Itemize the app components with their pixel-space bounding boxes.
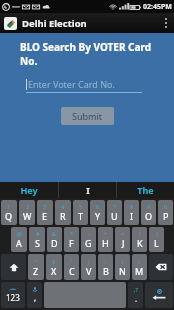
- button[interactable]: Backspace: [149, 254, 173, 280]
- staticText: N: [119, 265, 126, 277]
- button[interactable]: 4: [55, 200, 71, 225]
- staticText: G: [85, 237, 92, 249]
- staticText: =: [121, 230, 125, 237]
- staticText: Delhi Election: [22, 17, 87, 30]
- staticText: &: [52, 230, 57, 237]
- staticText: .: [135, 293, 138, 304]
- button[interactable]: :: [81, 254, 96, 280]
- staticText: Y: [95, 210, 101, 222]
- staticText: I: [86, 184, 90, 196]
- button[interactable]: ): [149, 227, 164, 252]
- staticText: B: [103, 265, 109, 277]
- staticText: H: [102, 237, 109, 249]
- button[interactable]: +: [98, 227, 113, 252]
- button[interactable]: !: [115, 254, 130, 280]
- button[interactable]: Shift: [1, 254, 26, 280]
- staticText: (: [139, 230, 141, 237]
- button[interactable]: Hey: [0, 182, 58, 198]
- button[interactable]: *: [64, 227, 79, 252]
- button[interactable]: $: [46, 254, 62, 280]
- staticText: Z: [33, 265, 39, 277]
- staticText: L: [154, 237, 159, 249]
- staticText: T: [78, 210, 84, 222]
- button[interactable]: /: [132, 254, 147, 280]
- button[interactable]: #: [29, 227, 45, 252]
- staticText: $: [52, 258, 56, 265]
- staticText: #: [36, 230, 40, 237]
- button[interactable]: 0: [158, 200, 173, 225]
- staticText: The: [137, 184, 154, 196]
- staticText: 9: [147, 203, 151, 210]
- staticText: J: [122, 237, 125, 249]
- staticText: X: [51, 265, 57, 277]
- staticText: K: [137, 237, 143, 249]
- staticText: W: [23, 210, 32, 222]
- button[interactable]: ': [64, 254, 79, 280]
- staticText: 3: [43, 203, 47, 210]
- button[interactable]: 9: [141, 200, 156, 225]
- staticText: C: [69, 265, 75, 277]
- button[interactable]: Enter: [145, 282, 173, 308]
- staticText: A: [16, 237, 22, 249]
- staticText: /: [138, 258, 141, 265]
- button[interactable]: 5: [73, 200, 88, 225]
- staticText: :: [88, 258, 90, 265]
- button[interactable]: Numbers and symbols: [1, 282, 25, 308]
- button[interactable]: 6: [90, 200, 105, 225]
- button[interactable]: 1: [1, 200, 17, 225]
- button[interactable]: ": [28, 254, 44, 280]
- staticText: Q: [5, 210, 13, 222]
- button[interactable]: 7: [107, 200, 122, 225]
- staticText: P: [163, 210, 169, 222]
- staticText: V: [86, 265, 92, 277]
- staticText: 6: [96, 203, 100, 210]
- staticText: ;: [105, 258, 107, 265]
- staticText: I: [130, 210, 134, 222]
- staticText: D: [51, 237, 58, 249]
- staticText: ): [156, 230, 158, 237]
- staticText: M: [135, 265, 144, 277]
- staticText: F: [69, 237, 74, 249]
- button[interactable]: 3: [37, 200, 53, 225]
- staticText: E: [42, 210, 48, 222]
- staticText: 2: [26, 203, 30, 210]
- staticText: O: [145, 210, 153, 222]
- staticText: ,: [34, 292, 37, 303]
- staticText: Enter Voter Card No.: [28, 78, 115, 90]
- button[interactable]: The: [117, 182, 174, 198]
- staticText: Submit: [72, 110, 103, 122]
- button[interactable]: I: [59, 182, 116, 198]
- staticText: BLO Search By VOTER Card No.: [20, 40, 168, 68]
- button[interactable]: Period: [128, 282, 143, 308]
- staticText: 1: [7, 203, 11, 210]
- button[interactable]: Comma and voice input: [27, 282, 42, 308]
- staticText: +: [104, 230, 108, 237]
- button[interactable]: (: [132, 227, 147, 252]
- staticText: 123: [6, 292, 20, 303]
- button[interactable]: More options: [158, 13, 174, 33]
- staticText: ": [35, 258, 38, 265]
- staticText: 7: [113, 203, 117, 210]
- button[interactable]: =: [115, 227, 130, 252]
- button[interactable]: &: [47, 227, 62, 252]
- staticText: 02:45PM: [143, 2, 172, 12]
- button[interactable]: -: [81, 227, 96, 252]
- button[interactable]: ;: [98, 254, 113, 280]
- staticText: 8: [130, 203, 134, 210]
- staticText: Hey: [20, 184, 38, 196]
- button[interactable]: Submit: [61, 107, 114, 125]
- button[interactable]: 8: [124, 200, 139, 225]
- button[interactable]: 2: [19, 200, 35, 225]
- button[interactable]: Enter Voter Card No.: [26, 78, 142, 93]
- staticText: R: [60, 210, 66, 222]
- staticText: U: [111, 210, 118, 222]
- staticText: S: [35, 237, 40, 249]
- staticText: -: [88, 230, 90, 237]
- button[interactable]: @: [11, 227, 27, 252]
- staticText: *: [70, 230, 74, 237]
- staticText: !: [122, 258, 124, 265]
- staticText: 0: [164, 203, 168, 210]
- staticText: ,?: [134, 286, 138, 293]
- staticText: 5: [79, 203, 83, 210]
